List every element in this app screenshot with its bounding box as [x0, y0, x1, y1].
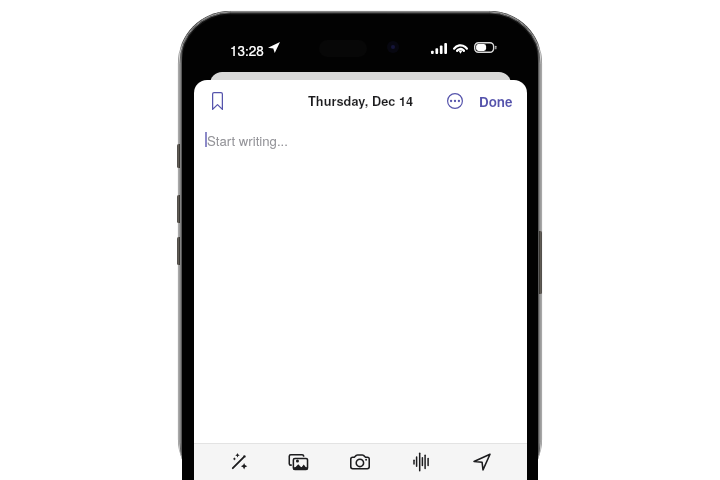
button[interactable]: Send: [451, 444, 512, 480]
button[interactable]: Done: [476, 87, 516, 115]
button[interactable]: More options: [441, 87, 469, 115]
staticText: 13:28: [230, 41, 264, 60]
button[interactable]: Camera: [329, 444, 390, 480]
staticText: Done: [479, 92, 513, 111]
button[interactable]: Audio recording: [390, 444, 451, 480]
staticText: Start writing...: [207, 131, 288, 150]
button[interactable]: Photo library: [269, 444, 329, 480]
button[interactable]: AI magic wand: [209, 444, 269, 480]
button[interactable]: Bookmark: [204, 83, 230, 119]
staticText: Thursday, Dec 14: [308, 92, 414, 110]
